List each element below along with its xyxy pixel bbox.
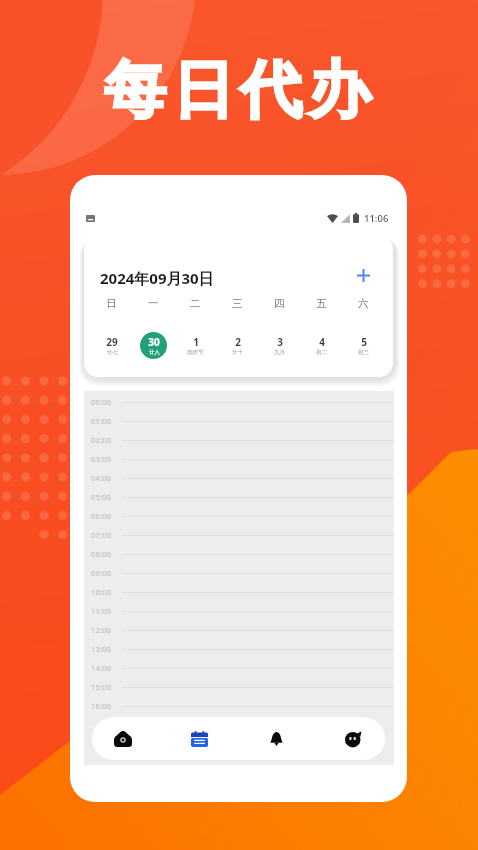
button[interactable]: 2 bbox=[224, 332, 251, 359]
staticText: 10:00 bbox=[91, 587, 111, 598]
staticText: 13:00 bbox=[91, 644, 111, 655]
staticText: 05:00 bbox=[91, 492, 111, 503]
button[interactable]: Notifications bbox=[255, 717, 298, 760]
button[interactable]: 29 bbox=[98, 332, 125, 359]
staticText: 国庆节 bbox=[187, 349, 204, 356]
staticText: 15:00 bbox=[91, 682, 111, 693]
staticText: 02:00 bbox=[91, 435, 111, 446]
staticText: 4 bbox=[319, 335, 325, 349]
staticText: 六 bbox=[358, 297, 369, 310]
button[interactable]: 30 bbox=[140, 332, 167, 359]
staticText: 2024年09月30日 bbox=[100, 268, 214, 288]
button[interactable]: 3 bbox=[266, 332, 293, 359]
staticText: 廿八 bbox=[149, 349, 160, 356]
staticText: 03:00 bbox=[91, 454, 111, 465]
staticText: 5 bbox=[361, 335, 367, 349]
staticText: 廿十 bbox=[232, 349, 243, 356]
staticText: 07:00 bbox=[91, 530, 111, 541]
staticText: 09:00 bbox=[91, 568, 111, 579]
staticText: 30 bbox=[148, 335, 160, 349]
staticText: 3 bbox=[277, 335, 283, 349]
staticText: 29 bbox=[106, 335, 118, 349]
staticText: 01:00 bbox=[91, 416, 111, 427]
staticText: 每日代办 bbox=[101, 51, 373, 129]
button[interactable]: Add event bbox=[349, 261, 377, 289]
button[interactable]: 5 bbox=[350, 332, 377, 359]
staticText: 初二 bbox=[316, 349, 327, 356]
staticText: 1 bbox=[193, 335, 199, 349]
staticText: 一 bbox=[148, 297, 159, 310]
staticText: 11:06 bbox=[364, 212, 389, 225]
staticText: 04:00 bbox=[91, 473, 111, 484]
staticText: 14:00 bbox=[91, 663, 111, 674]
staticText: 00:00 bbox=[91, 397, 111, 408]
staticText: 12:00 bbox=[91, 625, 111, 636]
staticText: 2 bbox=[235, 335, 241, 349]
staticText: 08:00 bbox=[91, 549, 111, 560]
button[interactable]: Home bbox=[101, 717, 144, 760]
staticText: 06:00 bbox=[91, 511, 111, 522]
staticText: 初三 bbox=[358, 349, 369, 356]
staticText: 五 bbox=[316, 297, 327, 310]
staticText: 二 bbox=[190, 297, 201, 310]
button[interactable]: 1 bbox=[182, 332, 209, 359]
staticText: 廿七 bbox=[107, 349, 118, 356]
button[interactable]: Profile bbox=[332, 717, 375, 760]
staticText: 16:00 bbox=[91, 701, 111, 712]
button[interactable]: 4 bbox=[308, 332, 335, 359]
staticText: 日 bbox=[106, 297, 117, 310]
staticText: 11:00 bbox=[91, 606, 111, 617]
staticText: 三 bbox=[232, 297, 243, 310]
staticText: 九月 bbox=[274, 349, 285, 356]
button[interactable]: Calendar bbox=[178, 717, 221, 760]
staticText: 四 bbox=[274, 297, 285, 310]
